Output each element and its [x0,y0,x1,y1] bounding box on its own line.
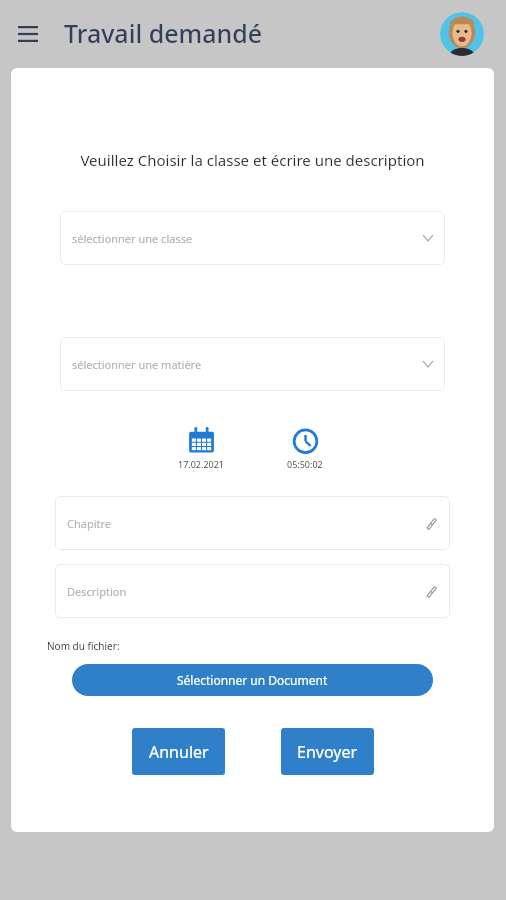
button[interactable]: Pick date [159,425,243,470]
other: Pick date [186,425,216,455]
staticText: Sélectionner un Document [177,672,328,688]
button[interactable]: Profile [440,12,484,56]
button[interactable]: Envoyer [281,728,374,775]
staticText: Chapitre [67,516,112,531]
button[interactable]: Pick time [263,425,347,470]
other: Pick time [290,425,320,455]
button[interactable]: Annuler [132,728,225,775]
button[interactable]: sélectionner une classe [60,211,445,265]
staticText: Nom du fichier: [47,639,120,653]
staticText: Annuler [149,741,209,763]
button[interactable]: Chapitre [55,496,450,550]
button[interactable]: Description [55,564,450,618]
staticText: 05:50:02 [287,458,323,470]
staticText: Description [67,584,127,599]
staticText: sélectionner une matière [72,357,202,372]
button[interactable]: Sélectionner un Document [72,664,433,696]
button[interactable]: Menu [8,14,48,54]
staticText: Veuillez Choisir la classe et écrire une… [11,150,494,170]
staticText: 17.02.2021 [178,458,225,470]
button[interactable]: sélectionner une matière [60,337,445,391]
other: Edit [422,582,440,600]
staticText: Envoyer [297,741,358,763]
staticText: sélectionner une classe [72,231,193,246]
other: Edit [422,514,440,532]
staticText: Travail demandé [64,16,263,50]
